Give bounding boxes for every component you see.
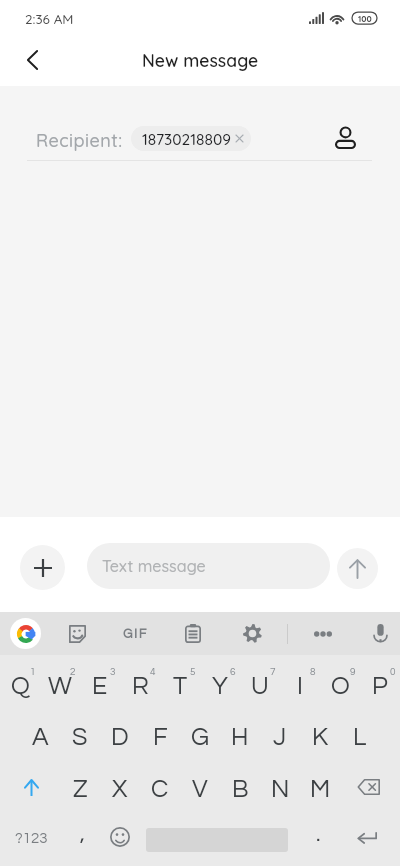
button[interactable]: Emoji	[102, 813, 142, 866]
button[interactable]: Shift	[0, 760, 60, 813]
staticText: 100	[358, 13, 372, 24]
staticText: Z	[73, 776, 88, 802]
staticText: X	[112, 776, 128, 802]
staticText: K	[312, 724, 329, 750]
button[interactable]: Stickers	[55, 612, 99, 655]
button[interactable]: Add attachment	[20, 545, 65, 590]
button[interactable]: L	[340, 707, 380, 760]
button[interactable]: ?123	[0, 813, 62, 866]
button[interactable]: Backspace	[340, 760, 400, 813]
button[interactable]: .	[290, 813, 340, 866]
staticText: O	[331, 673, 350, 699]
staticText: D	[111, 724, 129, 750]
button[interactable]: ,	[62, 813, 102, 866]
button[interactable]: 18730218809	[131, 126, 251, 151]
staticText: 7	[270, 667, 276, 677]
staticText: S	[72, 724, 88, 750]
button[interactable]: Q	[0, 655, 40, 707]
staticText: 4	[150, 667, 156, 677]
button[interactable]: G	[180, 707, 220, 760]
staticText: Y	[212, 673, 228, 699]
button[interactable]: K	[300, 707, 340, 760]
button[interactable]: Text message	[87, 543, 330, 589]
staticText: C	[151, 776, 169, 802]
button[interactable]: C	[140, 760, 180, 813]
staticText: 2	[70, 667, 76, 677]
staticText: Q	[11, 673, 30, 699]
staticText: 3	[110, 667, 116, 677]
staticText: 0	[390, 667, 396, 677]
button[interactable]: A	[20, 707, 60, 760]
button[interactable]: D	[100, 707, 140, 760]
staticText: GIF	[123, 627, 148, 640]
button[interactable]: X	[100, 760, 140, 813]
button[interactable]: T	[160, 655, 200, 707]
staticText: 1	[30, 667, 36, 677]
staticText: N	[271, 776, 290, 802]
staticText: F	[153, 724, 168, 750]
button[interactable]: Settings	[230, 612, 274, 655]
staticText: U	[251, 673, 269, 699]
staticText: M	[310, 776, 331, 802]
button[interactable]: P	[360, 655, 400, 707]
button[interactable]: F	[140, 707, 180, 760]
staticText: New message	[142, 49, 259, 71]
staticText: ,	[80, 823, 85, 846]
staticText: A	[32, 724, 49, 750]
button[interactable]: Enter	[340, 813, 400, 866]
staticText: 2:36 AM	[25, 10, 74, 27]
staticText: V	[192, 776, 208, 802]
button[interactable]: B	[220, 760, 260, 813]
button[interactable]: M	[300, 760, 340, 813]
staticText: G	[191, 724, 210, 750]
button[interactable]: S	[60, 707, 100, 760]
button[interactable]: W	[40, 655, 80, 707]
staticText: J	[273, 724, 287, 750]
staticText: R	[132, 673, 149, 699]
button[interactable]: O	[320, 655, 360, 707]
staticText: ?123	[15, 831, 48, 846]
button[interactable]: H	[220, 707, 260, 760]
button[interactable]: Google	[3, 612, 47, 655]
staticText: L	[353, 724, 367, 750]
button[interactable]: GIF	[112, 612, 156, 655]
staticText: 5	[190, 667, 196, 677]
button[interactable]: More options	[301, 612, 345, 655]
staticText: B	[232, 776, 249, 802]
staticText: .	[316, 823, 321, 846]
staticText: 18730218809	[142, 129, 231, 148]
button[interactable]: I	[280, 655, 320, 707]
button[interactable]: Choose contact	[323, 116, 367, 160]
button[interactable]: V	[180, 760, 220, 813]
staticText: P	[372, 673, 388, 699]
button[interactable]: Space	[142, 813, 290, 866]
button[interactable]: Z	[60, 760, 100, 813]
staticText: H	[231, 724, 249, 750]
button[interactable]: Send	[337, 548, 378, 589]
staticText: Text message	[102, 556, 206, 576]
button[interactable]: E	[80, 655, 120, 707]
staticText: E	[92, 673, 108, 699]
staticText: T	[173, 673, 188, 699]
button[interactable]: U	[240, 655, 280, 707]
button[interactable]: Back	[10, 38, 54, 82]
staticText: 6	[230, 667, 236, 677]
staticText: 9	[350, 667, 356, 677]
staticText: Recipient:	[36, 129, 123, 152]
staticText: I	[297, 673, 303, 699]
button[interactable]: Y	[200, 655, 240, 707]
staticText: 8	[310, 667, 316, 677]
button[interactable]: N	[260, 760, 300, 813]
button[interactable]: R	[120, 655, 160, 707]
button[interactable]: J	[260, 707, 300, 760]
button[interactable]: Clipboard	[171, 612, 215, 655]
button[interactable]: Voice input	[358, 612, 400, 655]
staticText: W	[48, 673, 72, 699]
